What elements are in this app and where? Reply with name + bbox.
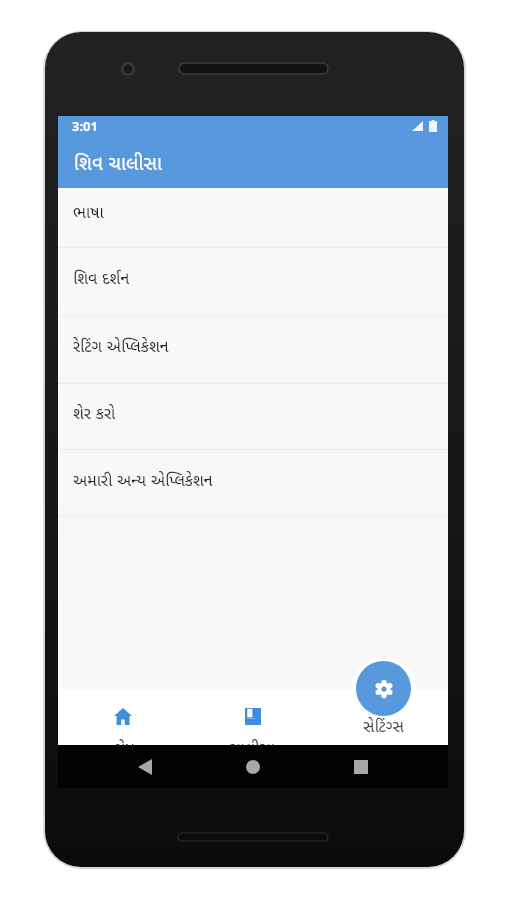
staticText: સેટિંગ્સ	[363, 715, 404, 733]
staticText: ભાષા	[73, 201, 104, 223]
staticText: શિવ દર્શન	[73, 267, 130, 289]
staticText: શેર કરો	[73, 402, 116, 424]
staticText: શિવ ચાલીસા	[74, 150, 163, 176]
button[interactable]: Chalisa	[188, 689, 318, 745]
staticText: અમારી અન્ય એપ્લિકેશન	[73, 469, 213, 491]
staticText: 3:01	[72, 117, 98, 135]
staticText: ચાલીસા	[230, 737, 276, 757]
button[interactable]: ભાષા	[58, 188, 448, 248]
button[interactable]: Settings	[356, 661, 411, 716]
button[interactable]: રેટિંગ એપ્લિકેશન	[58, 316, 448, 384]
button[interactable]: Settings tab	[318, 689, 448, 745]
staticText: હોમ	[111, 737, 135, 757]
button[interactable]: શિવ દર્શન	[58, 248, 448, 316]
button[interactable]: Recents	[341, 745, 381, 788]
button[interactable]: Home	[233, 745, 273, 788]
button[interactable]: Home	[58, 689, 188, 745]
button[interactable]: Back	[125, 745, 165, 788]
staticText: રેટિંગ એપ્લિકેશન	[73, 335, 169, 357]
button[interactable]: અમારી અન્ય એપ્લિકેશન	[58, 450, 448, 517]
button[interactable]: શેર કરો	[58, 384, 448, 450]
